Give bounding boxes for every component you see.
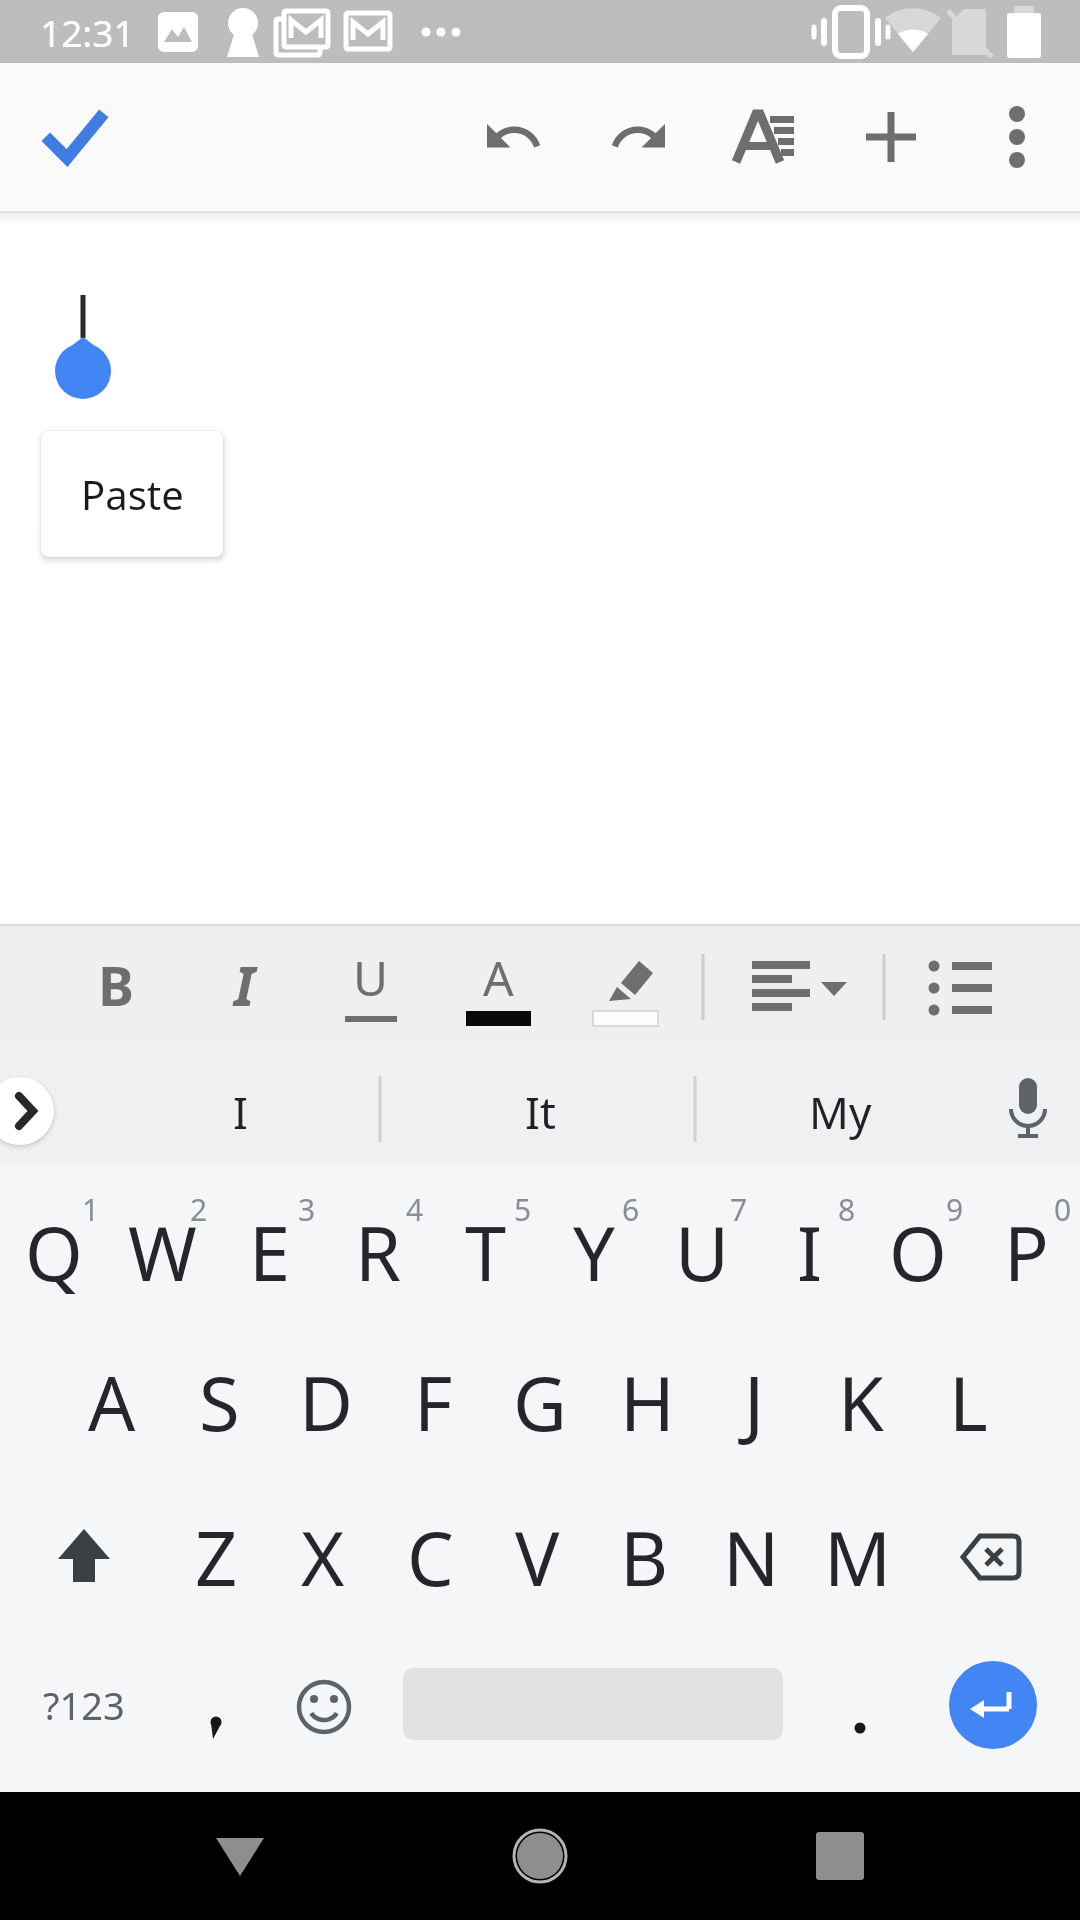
staticText: H [620, 1352, 675, 1453]
button[interactable]: Y [544, 1182, 644, 1322]
button[interactable]: E [220, 1182, 320, 1322]
staticText: 7 [730, 1189, 748, 1225]
button[interactable] [560, 924, 686, 1046]
staticText: 4 [406, 1189, 424, 1225]
button[interactable]: W [112, 1182, 212, 1322]
button[interactable]: C [380, 1487, 480, 1627]
button[interactable] [477, 1792, 603, 1920]
button[interactable]: U [308, 924, 434, 1046]
staticText: I [234, 948, 255, 1022]
button[interactable]: T [436, 1182, 536, 1322]
button[interactable]: F [383, 1332, 483, 1472]
staticText: F [414, 1352, 453, 1453]
staticText: P [1004, 1202, 1049, 1303]
button[interactable]: I [181, 924, 307, 1046]
button[interactable]: U [652, 1182, 752, 1322]
button[interactable] [828, 74, 954, 200]
button[interactable]: B [53, 924, 179, 1046]
staticText: M [824, 1507, 892, 1608]
button[interactable]: Z [166, 1487, 266, 1627]
staticText: Q [25, 1202, 83, 1303]
button[interactable]: M [808, 1487, 908, 1627]
staticText: B [620, 1507, 669, 1608]
staticText: Y [573, 1202, 615, 1303]
staticText: 6 [622, 1189, 640, 1225]
staticText: 3 [298, 1189, 316, 1225]
button[interactable] [0, 1077, 54, 1145]
staticText: W [128, 1202, 197, 1303]
staticText: U [353, 945, 389, 1010]
button[interactable]: B [594, 1487, 694, 1627]
button[interactable]: My [760, 1052, 920, 1171]
staticText: R [355, 1202, 402, 1303]
button[interactable] [702, 74, 828, 200]
button[interactable] [895, 924, 1021, 1046]
staticText: 1 [82, 1189, 100, 1225]
staticText: O [889, 1202, 947, 1303]
staticText: 8 [838, 1189, 856, 1225]
staticText: K [838, 1352, 884, 1453]
button[interactable]: H [597, 1332, 697, 1472]
staticText: I [233, 1082, 248, 1142]
staticText: ?123 [43, 1679, 125, 1731]
button[interactable] [450, 74, 576, 200]
button[interactable]: O [868, 1182, 968, 1322]
button[interactable]: Paste [41, 431, 223, 557]
button[interactable]: It [460, 1052, 620, 1171]
staticText: T [465, 1202, 507, 1303]
button[interactable] [576, 74, 702, 200]
staticText: V [515, 1507, 560, 1608]
staticText: 12:31 [40, 7, 135, 57]
button[interactable]: A [62, 1332, 162, 1472]
staticText: U [675, 1202, 730, 1303]
staticText: C [407, 1507, 454, 1608]
staticText: A [483, 945, 514, 1010]
button[interactable]: R [328, 1182, 428, 1322]
button[interactable]: V [487, 1487, 587, 1627]
button[interactable]: X [273, 1487, 373, 1627]
staticText: A [88, 1352, 136, 1453]
staticText: 0 [1054, 1189, 1072, 1225]
button[interactable]: S [169, 1332, 269, 1472]
button[interactable] [40, 105, 104, 169]
staticText: G [513, 1352, 567, 1453]
button[interactable]: I [170, 1052, 310, 1171]
staticText: D [299, 1352, 354, 1453]
button[interactable] [730, 924, 856, 1046]
staticText: 5 [514, 1189, 532, 1225]
staticText: N [723, 1507, 780, 1608]
staticText: L [949, 1352, 988, 1453]
staticText: X [301, 1507, 345, 1608]
button[interactable]: L [918, 1332, 1018, 1472]
staticText: J [744, 1352, 765, 1453]
button[interactable]: D [276, 1332, 376, 1472]
staticText: S [199, 1352, 240, 1453]
staticText: My [809, 1082, 872, 1142]
staticText: I [797, 1202, 823, 1303]
button[interactable]: ?123 [28, 1670, 140, 1740]
button[interactable]: N [701, 1487, 801, 1627]
staticText: B [98, 948, 134, 1022]
staticText: E [249, 1202, 291, 1303]
button[interactable] [284, 1667, 364, 1747]
button[interactable] [954, 74, 1080, 200]
button[interactable]: G [490, 1332, 590, 1472]
button[interactable]: I [760, 1182, 860, 1322]
staticText: It [525, 1082, 556, 1142]
button[interactable]: J [704, 1332, 804, 1472]
button[interactable]: K [811, 1332, 911, 1472]
button[interactable]: Q [4, 1182, 104, 1322]
staticText: 9 [946, 1189, 964, 1225]
staticText: Z [195, 1507, 238, 1608]
button[interactable]: P [976, 1182, 1076, 1322]
button[interactable]: A [435, 924, 561, 1046]
staticText: Paste [81, 467, 184, 521]
button[interactable] [777, 1792, 903, 1920]
button[interactable] [810, 1655, 910, 1755]
button[interactable] [177, 1792, 303, 1920]
button[interactable] [170, 1655, 270, 1755]
staticText: 2 [190, 1189, 208, 1225]
